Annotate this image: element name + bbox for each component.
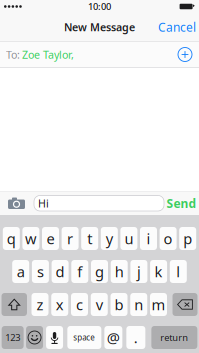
button[interactable]: d: [52, 260, 69, 283]
staticText: m: [151, 295, 165, 314]
button[interactable]: v: [91, 293, 108, 316]
staticText: h: [115, 262, 124, 281]
staticText: 123: [5, 331, 20, 344]
button[interactable]: .: [126, 326, 145, 349]
staticText: Zoe Taylor,: [22, 47, 74, 62]
staticText: e: [46, 229, 54, 248]
button[interactable]: Camera: [0, 191, 34, 215]
button[interactable]: i: [140, 227, 157, 250]
button[interactable]: return: [151, 326, 197, 349]
staticText: t: [87, 229, 92, 248]
staticText: Send: [166, 195, 196, 211]
staticText: d: [56, 262, 65, 281]
staticText: a: [17, 262, 25, 281]
staticText: z: [36, 295, 43, 314]
button[interactable]: b: [110, 293, 127, 316]
staticText: .: [134, 328, 138, 347]
button[interactable]: space: [67, 326, 101, 349]
staticText: To:: [6, 47, 20, 62]
button[interactable]: f: [71, 260, 88, 283]
button[interactable]: Dictation: [46, 326, 63, 349]
staticText: Hi: [38, 196, 49, 210]
button[interactable]: l: [170, 260, 187, 283]
button[interactable]: Send: [164, 191, 199, 215]
button[interactable]: w: [22, 227, 39, 250]
button[interactable]: h: [111, 260, 128, 283]
button[interactable]: y: [101, 227, 118, 250]
staticText: u: [124, 229, 133, 248]
staticText: p: [183, 229, 192, 248]
staticText: Cancel: [158, 19, 196, 35]
button[interactable]: u: [120, 227, 137, 250]
button[interactable]: c: [71, 293, 88, 316]
staticText: v: [96, 295, 103, 314]
staticText: x: [56, 295, 64, 314]
button[interactable]: k: [150, 260, 167, 283]
button[interactable]: j: [130, 260, 147, 283]
button[interactable]: g: [91, 260, 108, 283]
staticText: l: [176, 262, 180, 281]
button[interactable]: t: [81, 227, 98, 250]
staticText: @: [107, 328, 120, 347]
staticText: c: [76, 295, 83, 314]
staticText: q: [7, 229, 16, 248]
button[interactable]: p: [179, 227, 196, 250]
staticText: o: [164, 229, 173, 248]
staticText: g: [95, 262, 104, 281]
button[interactable]: Add contact: [178, 47, 192, 61]
button[interactable]: 123: [2, 326, 24, 349]
button[interactable]: Emoji: [26, 326, 43, 349]
staticText: i: [146, 229, 150, 248]
staticText: w: [25, 229, 37, 248]
button[interactable]: m: [150, 293, 167, 316]
button[interactable]: o: [160, 227, 177, 250]
staticText: s: [37, 262, 44, 281]
button[interactable]: @: [104, 326, 122, 349]
button[interactable]: x: [51, 293, 68, 316]
staticText: n: [134, 295, 143, 314]
button[interactable]: z: [31, 293, 48, 316]
staticText: b: [114, 295, 123, 314]
button[interactable]: n: [130, 293, 147, 316]
button[interactable]: q: [3, 227, 20, 250]
staticText: r: [67, 229, 73, 248]
staticText: y: [106, 229, 113, 248]
staticText: return: [160, 331, 188, 344]
staticText: space: [73, 332, 95, 343]
staticText: j: [137, 262, 141, 281]
staticText: f: [77, 262, 82, 281]
button[interactable]: Shift: [1, 293, 27, 316]
staticText: New Message: [64, 20, 135, 34]
button[interactable]: Delete: [172, 293, 197, 316]
button[interactable]: s: [32, 260, 49, 283]
button[interactable]: e: [42, 227, 59, 250]
button[interactable]: Cancel: [152, 13, 199, 41]
staticText: 10:00: [88, 0, 111, 13]
button[interactable]: r: [62, 227, 79, 250]
staticText: k: [155, 262, 163, 281]
button[interactable]: a: [12, 260, 29, 283]
